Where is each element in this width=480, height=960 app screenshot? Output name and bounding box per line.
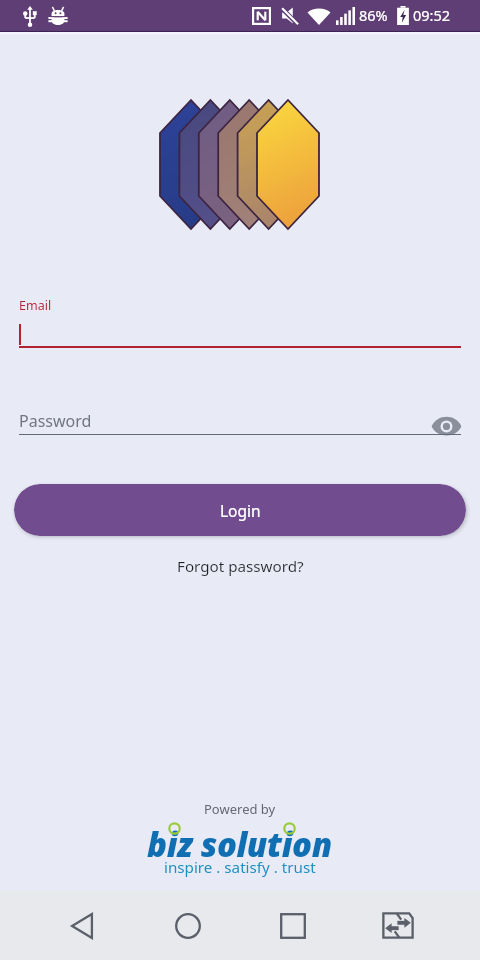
staticText: Email: [19, 297, 52, 314]
button[interactable]: Login: [14, 484, 466, 536]
button[interactable]: Forgot password?: [169, 553, 312, 580]
staticText: Forgot password?: [177, 556, 304, 577]
button[interactable]: Recent apps: [263, 891, 323, 960]
staticText: 09:52: [413, 5, 451, 25]
button[interactable]: Rotate screen: [368, 891, 428, 960]
button[interactable]: Password field: [19, 406, 461, 436]
staticText: Password: [19, 410, 92, 432]
button[interactable]: Show password: [431, 416, 462, 436]
button[interactable]: Back: [52, 891, 112, 960]
staticText: biz solution: [147, 822, 332, 867]
button[interactable]: Home: [158, 891, 218, 960]
staticText: 86%: [359, 5, 388, 25]
staticText: Powered by: [204, 800, 276, 818]
staticText: Login: [220, 500, 261, 521]
button[interactable]: Email field: [19, 294, 461, 350]
staticText: inspire . satisfy . trust: [164, 857, 316, 878]
